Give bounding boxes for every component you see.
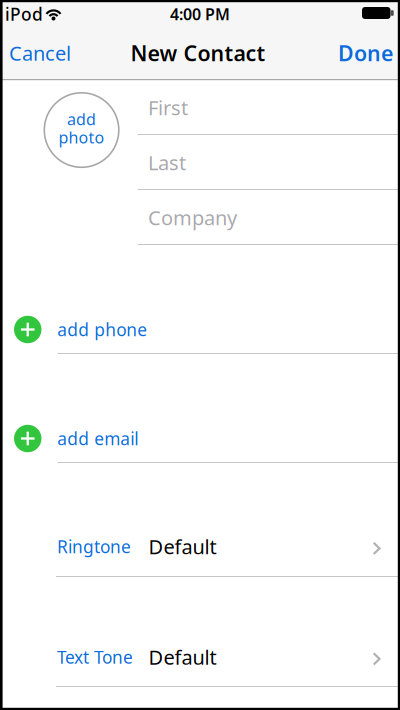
staticText: photo (58, 126, 104, 148)
staticText: New Contact (130, 39, 265, 67)
staticText: Cancel (9, 40, 71, 66)
button[interactable]: Text Tone (0, 631, 400, 686)
staticText: Company (148, 204, 237, 231)
staticText: Default (148, 644, 216, 670)
staticText: Text Tone (57, 645, 133, 668)
button[interactable]: add email (0, 411, 400, 466)
staticText: add email (57, 427, 138, 450)
staticText: 4:00 PM (170, 3, 230, 25)
staticText: Last (148, 149, 186, 176)
staticText: Default (148, 533, 216, 560)
button[interactable]: add (44, 93, 119, 167)
button[interactable]: Cancel (9, 39, 71, 67)
staticText: Done (338, 39, 393, 67)
staticText: iPod (5, 2, 43, 25)
staticText: First (148, 94, 188, 121)
button[interactable]: add phone (0, 302, 400, 357)
staticText: add phone (57, 318, 147, 341)
button[interactable]: Last (148, 135, 400, 190)
button[interactable]: Done (338, 39, 393, 67)
button[interactable]: Company (148, 190, 400, 245)
button[interactable]: Ringtone (0, 521, 400, 576)
button[interactable]: First (148, 80, 400, 135)
staticText: add (67, 108, 96, 129)
staticText: Ringtone (57, 535, 131, 558)
